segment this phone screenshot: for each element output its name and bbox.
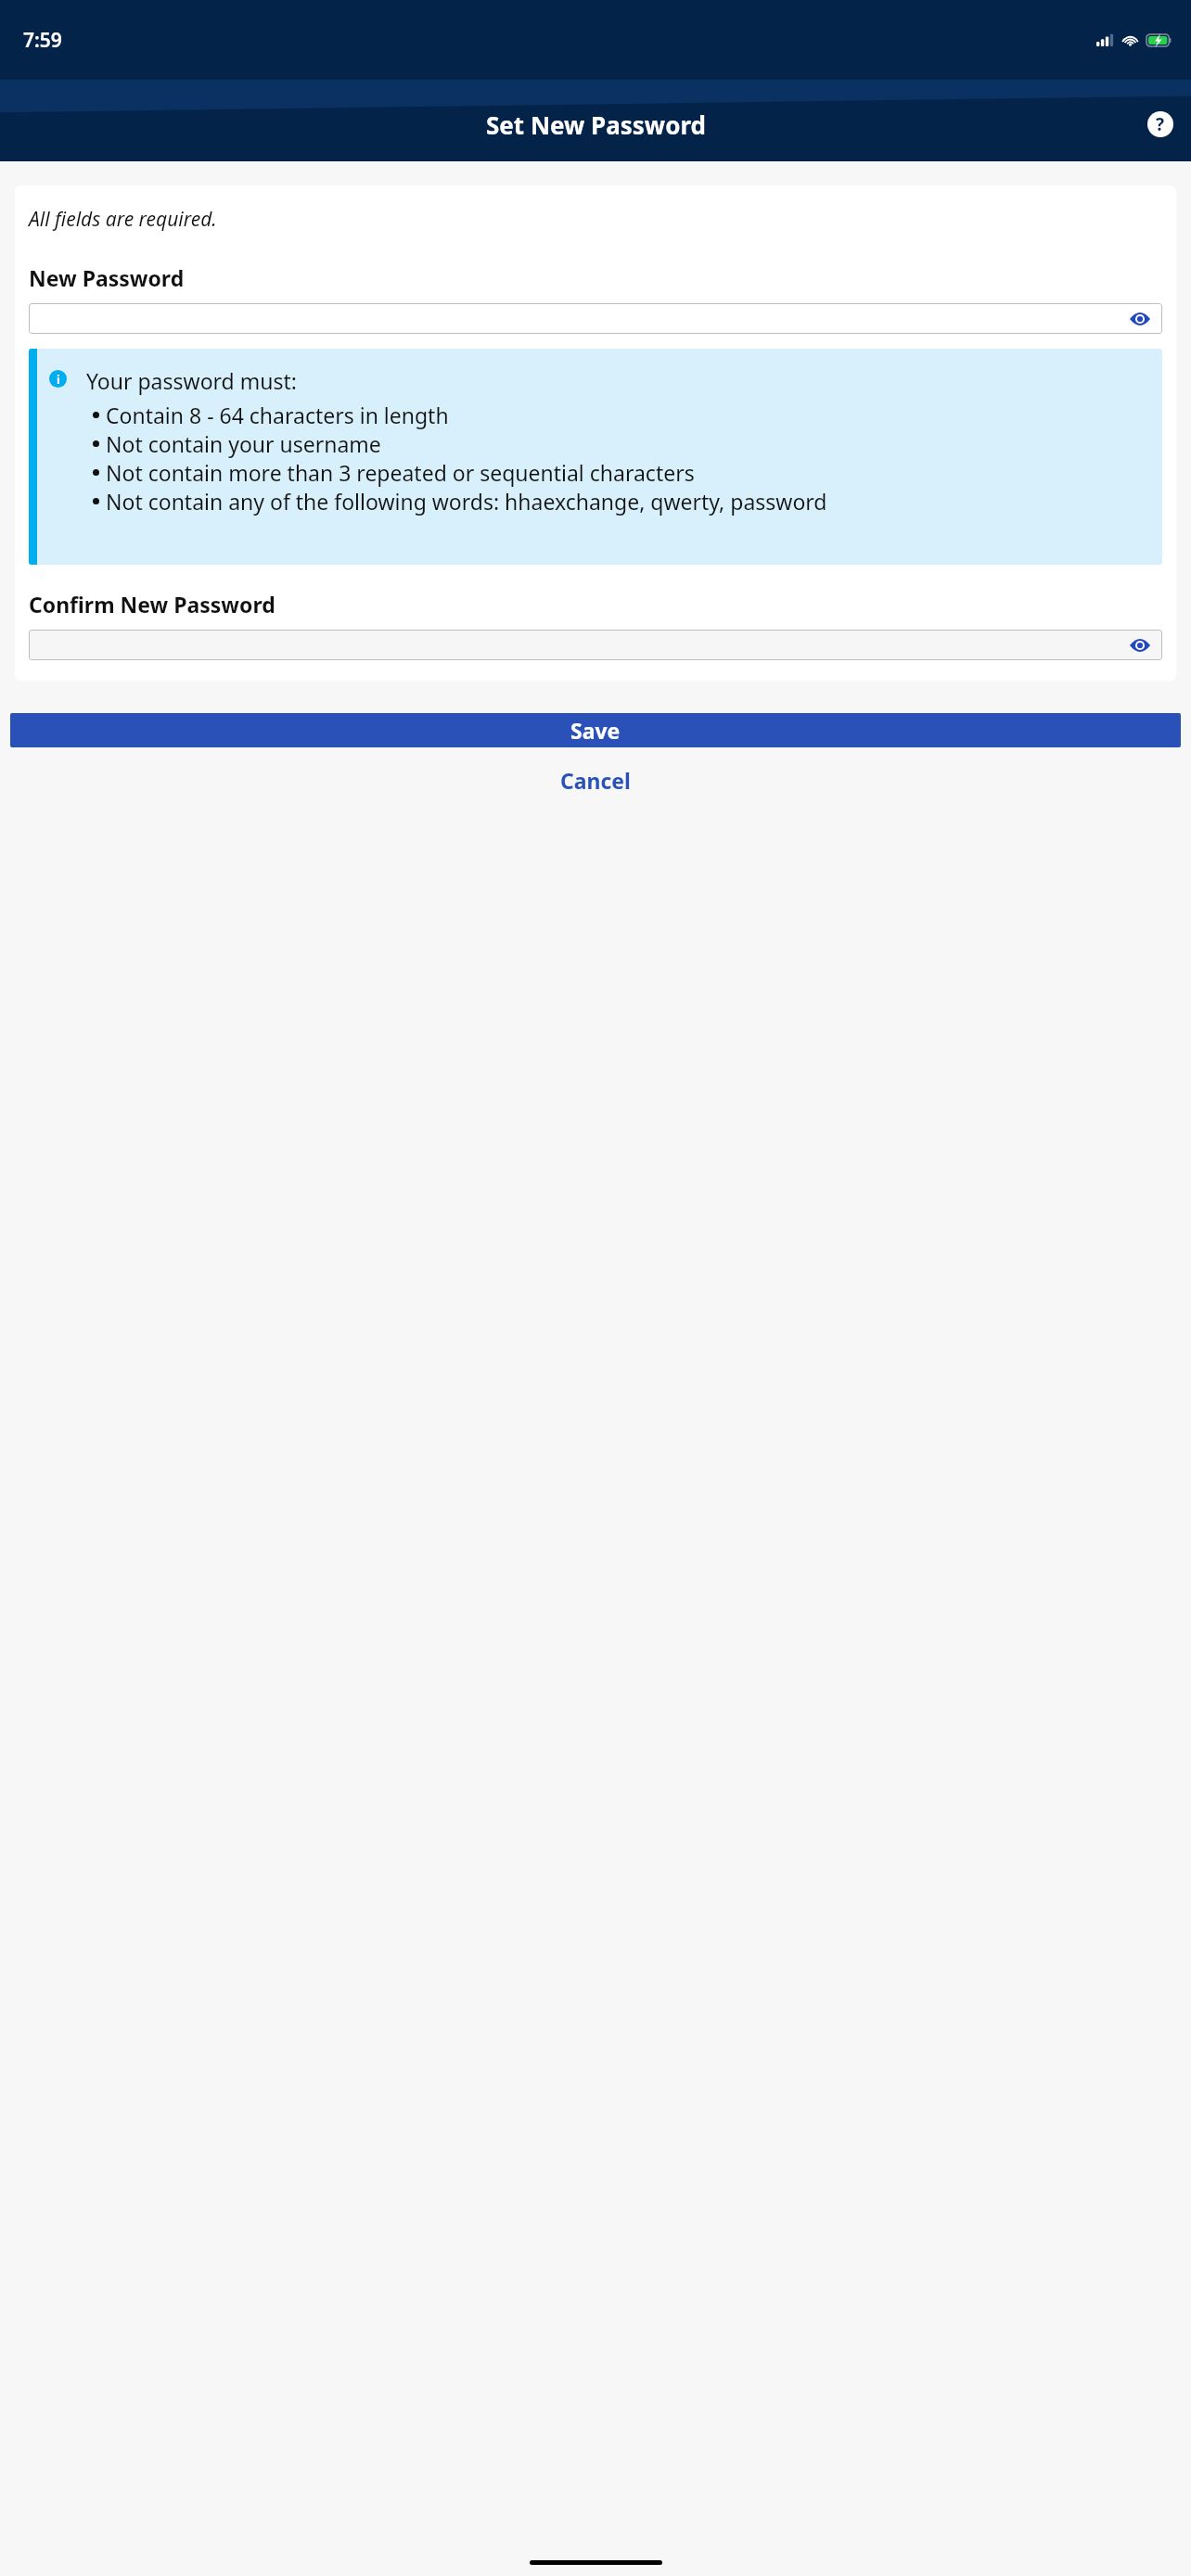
staticText: Not contain more than 3 repeated or sequ… — [106, 458, 695, 487]
button[interactable]: Show password — [1129, 308, 1151, 330]
button[interactable]: Save — [10, 713, 1181, 747]
staticText: Contain 8 - 64 characters in length — [106, 401, 449, 429]
staticText: New Password — [29, 263, 185, 292]
staticText: All fields are required. — [29, 206, 217, 233]
staticText: Not contain your username — [106, 429, 381, 458]
staticText: ? — [1156, 112, 1165, 136]
staticText: Cancel — [560, 766, 631, 795]
button[interactable]: Show password — [29, 303, 1162, 334]
staticText: Set New Password — [486, 108, 706, 141]
staticText: Confirm New Password — [29, 590, 275, 618]
button[interactable]: Cancel — [0, 759, 1191, 802]
button[interactable]: Show password — [29, 630, 1162, 660]
button[interactable]: Help — [1147, 111, 1173, 137]
staticText: i — [57, 371, 60, 388]
staticText: Save — [570, 716, 621, 745]
button[interactable]: Show password — [1129, 634, 1151, 657]
staticText: 7:59 — [23, 27, 62, 54]
staticText: Your password must: — [86, 366, 297, 395]
staticText: Not contain any of the following words: … — [106, 487, 827, 516]
